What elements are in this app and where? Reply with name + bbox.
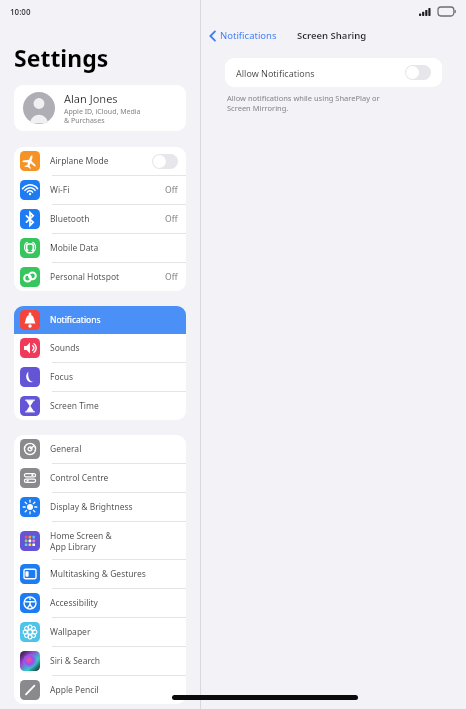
button[interactable]: Home Screen & App Library	[14, 522, 186, 559]
button[interactable]: Control Centre	[14, 464, 186, 492]
button[interactable]: Toggle	[152, 154, 178, 169]
button[interactable]: Apple Pencil	[14, 676, 186, 704]
staticText: Mobile Data	[50, 242, 178, 254]
staticText: Alan Jones	[64, 91, 118, 106]
staticText: Multitasking & Gestures	[50, 568, 178, 580]
button[interactable]: Siri & Search	[14, 647, 186, 675]
staticText: Apple ID, iCloud, Media & Purchases	[64, 107, 141, 125]
staticText: Screen Sharing	[297, 29, 367, 42]
staticText: Notifications	[220, 29, 277, 42]
staticText: Sounds	[50, 342, 178, 354]
staticText: Allow Notifications	[236, 67, 405, 79]
button[interactable]: Allow Notifications	[225, 58, 442, 87]
button[interactable]: Wi-Fi	[14, 176, 186, 204]
button[interactable]: Alan Jones	[14, 85, 186, 131]
staticText: Airplane Mode	[50, 155, 152, 167]
button[interactable]: Personal Hotspot	[14, 263, 186, 291]
staticText: Wi-Fi	[50, 184, 165, 196]
staticText: Focus	[50, 371, 178, 383]
staticText: Display & Brightness	[50, 501, 178, 513]
staticText: Screen Time	[50, 400, 178, 412]
staticText: Personal Hotspot	[50, 271, 165, 283]
button[interactable]: Airplane Mode	[14, 147, 186, 175]
staticText: Bluetooth	[50, 213, 165, 225]
staticText: Settings	[14, 42, 109, 73]
button[interactable]: Display & Brightness	[14, 493, 186, 521]
staticText: Off	[165, 184, 178, 196]
staticText: Allow notifications while using SharePla…	[227, 93, 380, 113]
staticText: Siri & Search	[50, 655, 178, 667]
staticText: Control Centre	[50, 472, 178, 484]
button[interactable]: Notifications	[209, 29, 277, 42]
staticText: Wallpaper	[50, 626, 178, 638]
staticText: 10:00	[10, 6, 31, 17]
staticText: Notifications	[50, 314, 178, 326]
staticText: Home Screen & App Library	[50, 530, 178, 552]
staticText: Accessibility	[50, 597, 178, 609]
button[interactable]: Focus	[14, 363, 186, 391]
button[interactable]: Toggle	[405, 65, 431, 80]
button[interactable]: Notifications	[14, 306, 186, 334]
button[interactable]: Mobile Data	[14, 234, 186, 262]
staticText: Off	[165, 213, 178, 225]
button[interactable]: General	[14, 435, 186, 463]
button[interactable]: Sounds	[14, 334, 186, 362]
button[interactable]: Accessibility	[14, 589, 186, 617]
button[interactable]: Multitasking & Gestures	[14, 560, 186, 588]
button[interactable]: Bluetooth	[14, 205, 186, 233]
button[interactable]: Wallpaper	[14, 618, 186, 646]
staticText: General	[50, 443, 178, 455]
staticText: Apple Pencil	[50, 684, 178, 696]
staticText: Off	[165, 271, 178, 283]
button[interactable]: Screen Time	[14, 392, 186, 420]
